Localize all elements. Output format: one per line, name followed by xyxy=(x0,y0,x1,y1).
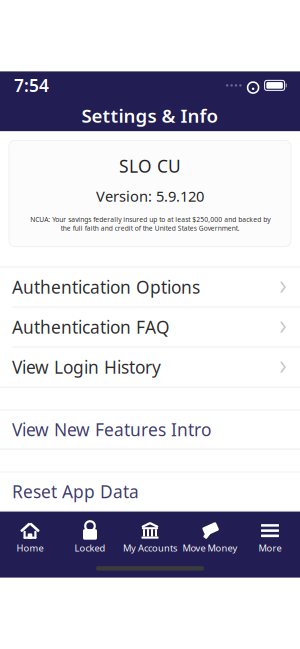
staticText: SLO CU xyxy=(119,154,181,177)
staticText: Home xyxy=(16,542,43,554)
button[interactable]: Move Money xyxy=(180,516,240,560)
staticText: Reset App Data xyxy=(12,480,139,503)
button[interactable]: Authentication FAQ xyxy=(0,308,300,347)
staticText: Move Money xyxy=(182,542,237,554)
staticText: My Accounts xyxy=(123,542,177,554)
button[interactable]: Home xyxy=(0,516,60,560)
button[interactable]: View New Features Intro xyxy=(0,411,300,449)
staticText: Authentication FAQ xyxy=(12,316,170,339)
staticText: View New Features Intro xyxy=(12,418,211,441)
staticText: Authentication Options xyxy=(12,276,200,299)
staticText: Settings & Info xyxy=(81,103,218,128)
staticText: More xyxy=(258,542,281,554)
button[interactable]: Locked xyxy=(60,516,120,560)
button[interactable]: Authentication Options xyxy=(0,268,300,307)
button[interactable]: More xyxy=(240,516,300,560)
button[interactable]: My Accounts xyxy=(120,516,180,560)
button[interactable]: View Login History xyxy=(0,348,300,387)
staticText: Version: 5.9.120 xyxy=(96,186,204,206)
staticText: Locked xyxy=(74,542,105,554)
staticText: 7:54 xyxy=(14,74,49,97)
staticText: NCUA: Your savings federally insured up … xyxy=(30,215,270,233)
button[interactable]: Reset App Data xyxy=(0,473,300,511)
staticText: View Login History xyxy=(12,356,161,379)
